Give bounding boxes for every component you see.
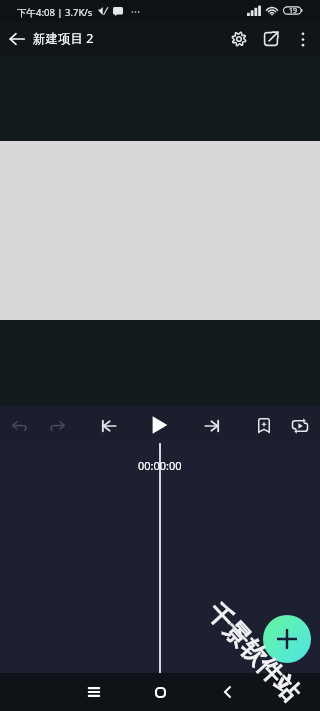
staticText: 下午4:08 | 3.7K/s: [17, 6, 93, 19]
button[interactable]: Back: [207, 673, 247, 711]
button[interactable]: Back: [5, 22, 29, 56]
button[interactable]: Add media: [263, 615, 311, 663]
button[interactable]: Loop: [283, 409, 317, 443]
button[interactable]: Export: [259, 22, 282, 56]
button[interactable]: Play: [143, 408, 177, 442]
button[interactable]: Skip to end: [195, 409, 229, 443]
button[interactable]: Recent apps: [74, 673, 114, 711]
button[interactable]: More options: [292, 22, 313, 56]
button[interactable]: Home: [140, 673, 180, 711]
button[interactable]: Redo: [40, 409, 74, 443]
staticText: 00:00:00: [138, 458, 182, 473]
staticText: 新建项目 2: [33, 30, 94, 47]
button[interactable]: Settings: [227, 22, 250, 56]
button[interactable]: Undo: [2, 409, 36, 443]
staticText: 19: [289, 6, 298, 16]
staticText: 千景软件站: [201, 597, 307, 708]
button[interactable]: Skip to start: [92, 409, 126, 443]
button[interactable]: Bookmark: [247, 408, 281, 442]
